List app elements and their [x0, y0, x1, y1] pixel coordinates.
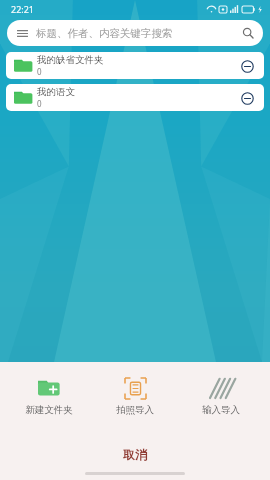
- other: Search: [242, 27, 254, 39]
- other: Menu: [16, 27, 29, 40]
- staticText: 0: [37, 98, 42, 109]
- staticText: 我的语文: [37, 86, 75, 98]
- button[interactable]: Remove folder: [238, 57, 256, 75]
- staticText: 输入导入: [202, 404, 240, 416]
- button[interactable]: 我的语文: [6, 84, 264, 111]
- staticText: 新建文件夹: [25, 404, 73, 416]
- staticText: 拍照导入: [116, 404, 154, 416]
- staticText: 22:21: [11, 3, 35, 15]
- staticText: 我的缺省文件夹: [37, 54, 104, 66]
- button[interactable]: 我的缺省文件夹: [6, 52, 264, 79]
- staticText: 标题、作者、内容关键字搜索: [36, 27, 173, 40]
- button[interactable]: 取消: [0, 441, 270, 467]
- button[interactable]: 新建文件夹: [12, 374, 86, 418]
- staticText: 0: [37, 66, 42, 77]
- button[interactable]: Menu: [7, 20, 263, 46]
- button[interactable]: Remove folder: [238, 89, 256, 107]
- button[interactable]: 输入导入: [184, 374, 258, 418]
- button[interactable]: 拍照导入: [98, 374, 172, 418]
- staticText: 取消: [123, 447, 147, 462]
